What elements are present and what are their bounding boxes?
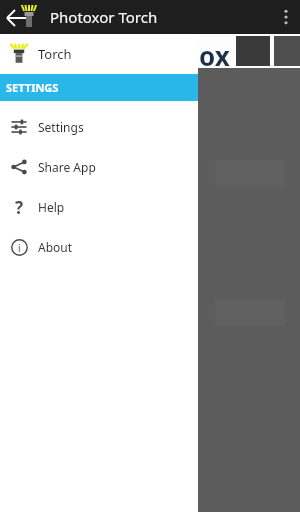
staticText: SETTINGS <box>6 80 59 95</box>
button[interactable]: Torch <box>0 34 198 74</box>
staticText: Help <box>38 199 65 215</box>
staticText: ox <box>199 38 230 66</box>
button[interactable]: Navigate up <box>0 0 46 34</box>
button[interactable]: Settings <box>0 107 198 147</box>
button[interactable]: Share App <box>0 147 198 187</box>
staticText: About <box>38 239 73 255</box>
staticText: i <box>18 241 21 255</box>
staticText: Torch <box>38 45 72 63</box>
button[interactable]: More options <box>272 0 300 34</box>
staticText: Settings <box>38 119 84 135</box>
staticText: Photoxor Torch <box>50 7 158 27</box>
button[interactable]: ? <box>0 187 198 227</box>
staticText: Share App <box>38 159 96 175</box>
button[interactable]: i <box>0 227 198 267</box>
staticText: ? <box>15 196 24 219</box>
